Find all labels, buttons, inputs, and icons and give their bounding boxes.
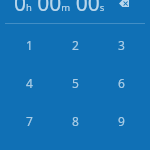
staticText: 2 — [72, 37, 79, 53]
button[interactable]: 2 — [52, 26, 98, 64]
button[interactable]: Backspace — [113, 0, 150, 23]
button[interactable]: 9 — [98, 102, 144, 140]
staticText: 9 — [118, 113, 125, 129]
staticText: 6 — [118, 75, 125, 91]
staticText: 0h 00m 00s — [14, 0, 105, 12]
button[interactable]: 4 — [7, 64, 52, 102]
button[interactable]: 7 — [7, 102, 52, 140]
staticText: 8 — [72, 113, 79, 129]
staticText: 4 — [26, 75, 33, 91]
staticText: 7 — [26, 113, 33, 129]
button[interactable]: 5 — [52, 64, 98, 102]
staticText: 1 — [26, 37, 33, 53]
button[interactable]: 3 — [98, 26, 144, 64]
button[interactable]: 8 — [52, 102, 98, 140]
staticText: 3 — [118, 37, 125, 53]
button[interactable]: 6 — [98, 64, 144, 102]
staticText: 5 — [72, 75, 79, 91]
button[interactable]: 1 — [7, 26, 52, 64]
